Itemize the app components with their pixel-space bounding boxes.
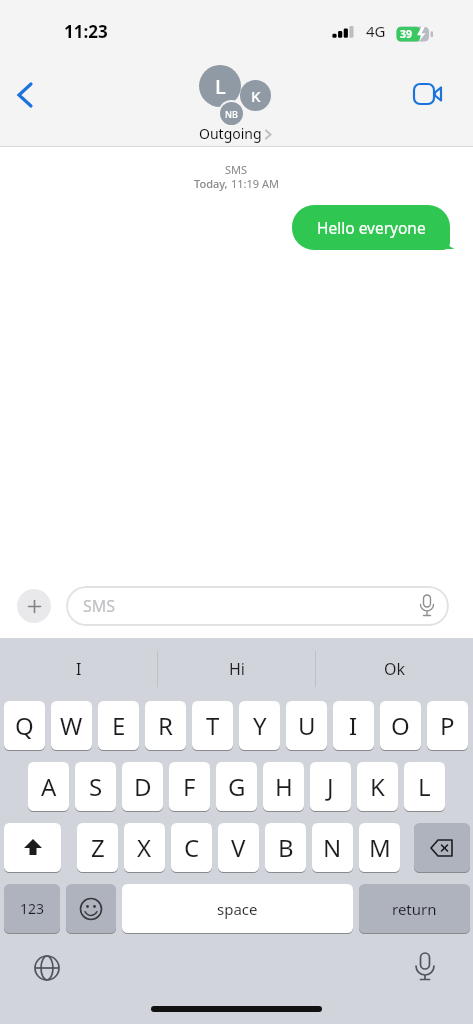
staticText: V [231, 831, 246, 864]
button[interactable] [4, 823, 61, 872]
staticText: T [206, 709, 220, 742]
staticText: O [391, 709, 410, 742]
staticText: L [418, 770, 431, 803]
button[interactable]: I [333, 701, 374, 750]
staticText: Q [15, 709, 34, 742]
staticText: W [60, 709, 83, 742]
button[interactable] [17, 589, 51, 623]
staticText: SMS [225, 162, 248, 177]
button[interactable]: Hello everyone [292, 205, 454, 250]
staticText: R [158, 709, 173, 742]
staticText: N [323, 831, 342, 864]
staticText: 39 [400, 27, 413, 41]
button[interactable]: Ok [316, 638, 473, 700]
button[interactable]: C [171, 823, 212, 872]
staticText: G [228, 770, 246, 803]
button[interactable]: T [192, 701, 233, 750]
staticText: L [215, 73, 226, 100]
button[interactable]: L [404, 762, 445, 811]
button[interactable]: Y [239, 701, 280, 750]
staticText: NB [225, 108, 238, 120]
button[interactable] [406, 77, 450, 111]
button[interactable]: V [218, 823, 259, 872]
staticText: S [89, 770, 103, 803]
staticText: A [41, 770, 57, 803]
staticText: Outgoing [199, 124, 262, 143]
button[interactable]: R [145, 701, 186, 750]
staticText: E [112, 709, 126, 742]
button[interactable]: X [124, 823, 165, 872]
button[interactable]: B [265, 823, 306, 872]
staticText: Ok [384, 658, 406, 680]
button[interactable]: D [122, 762, 163, 811]
button[interactable]: return [359, 884, 470, 933]
staticText: Hello everyone [317, 217, 426, 238]
button[interactable]: J [310, 762, 351, 811]
button[interactable]: space [122, 884, 353, 933]
staticText: 11:23 [64, 20, 108, 43]
button[interactable]: E [98, 701, 139, 750]
button[interactable]: N [312, 823, 353, 872]
button[interactable]: O [380, 701, 421, 750]
staticText: space [217, 899, 258, 919]
button[interactable]: W [51, 701, 92, 750]
staticText: X [137, 831, 152, 864]
button[interactable]: H [263, 762, 304, 811]
button[interactable] [66, 884, 116, 933]
button[interactable]: K [357, 762, 398, 811]
staticText: SMS [83, 595, 116, 617]
staticText: U [298, 709, 316, 742]
staticText: H [275, 770, 293, 803]
button[interactable]: I [0, 638, 157, 700]
button[interactable]: 123 [4, 884, 60, 933]
staticText: J [327, 770, 334, 803]
staticText: Z [91, 831, 105, 864]
button[interactable]: M [359, 823, 400, 872]
button[interactable] [8, 75, 48, 115]
staticText: D [134, 770, 152, 803]
button[interactable]: U [286, 701, 327, 750]
staticText: Today, [194, 176, 231, 191]
staticText: K [251, 86, 261, 106]
staticText: F [183, 770, 196, 803]
staticText: return [392, 899, 437, 919]
button[interactable]: Hi [158, 638, 315, 700]
button[interactable]: A [28, 762, 69, 811]
staticText: I [349, 709, 358, 742]
button[interactable]: Q [4, 701, 45, 750]
button[interactable]: G [216, 762, 257, 811]
button[interactable]: Z [77, 823, 118, 872]
button[interactable] [403, 945, 447, 989]
button[interactable]: P [427, 701, 468, 750]
staticText: P [440, 709, 455, 742]
staticText: C [184, 831, 200, 864]
staticText: 4G [366, 21, 386, 41]
button[interactable]: S [75, 762, 116, 811]
button[interactable]: F [169, 762, 210, 811]
staticText: Hi [229, 658, 245, 680]
staticText: K [370, 770, 385, 803]
staticText: 11:19 AM [231, 176, 279, 191]
staticText: I [76, 658, 82, 680]
staticText: 123 [20, 899, 45, 918]
staticText: B [278, 831, 294, 864]
button[interactable]: SMS [66, 586, 449, 626]
button[interactable] [414, 823, 470, 872]
button[interactable] [25, 946, 69, 990]
staticText: Y [253, 709, 267, 742]
staticText: M [369, 831, 391, 864]
button[interactable]: L [190, 60, 280, 145]
